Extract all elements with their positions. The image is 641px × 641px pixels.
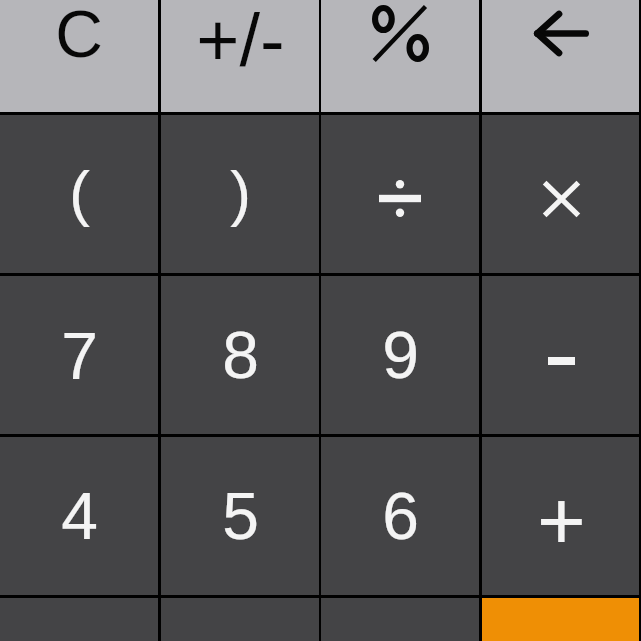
- button[interactable]: Minus: [482, 276, 640, 434]
- staticText: (: [69, 158, 90, 227]
- button[interactable]: (: [0, 115, 158, 273]
- staticText: 7: [61, 319, 98, 393]
- button[interactable]: Divide: [321, 115, 479, 273]
- button[interactable]: 9: [321, 276, 479, 434]
- button[interactable]: 6: [321, 437, 479, 595]
- staticText: 5: [222, 479, 259, 553]
- button[interactable]: 8: [161, 276, 319, 434]
- button[interactable]: +: [482, 437, 640, 595]
- button[interactable]: Backspace: [482, 0, 640, 112]
- button[interactable]: 4: [0, 437, 158, 595]
- button[interactable]: 7: [0, 276, 158, 434]
- staticText: 4: [61, 479, 98, 553]
- button[interactable]: Percent: [321, 0, 479, 112]
- staticText: ): [230, 158, 251, 227]
- button[interactable]: C: [0, 0, 158, 112]
- other: Percent: [372, 5, 429, 62]
- button[interactable]: +/-: [161, 0, 319, 112]
- staticText: 9: [382, 318, 419, 392]
- other: Divide: [379, 180, 421, 217]
- staticText: C: [55, 0, 103, 71]
- button[interactable]: Multiply: [482, 115, 640, 273]
- other: Backspace: [534, 11, 589, 56]
- button[interactable]: 5: [161, 437, 319, 595]
- staticText: +: [537, 473, 586, 566]
- staticText: 8: [222, 318, 259, 392]
- button[interactable]: ): [161, 115, 319, 273]
- button[interactable]: =: [482, 598, 640, 641]
- other: Multiply: [542, 180, 581, 218]
- staticText: +/-: [196, 0, 285, 82]
- staticText: 6: [382, 479, 419, 553]
